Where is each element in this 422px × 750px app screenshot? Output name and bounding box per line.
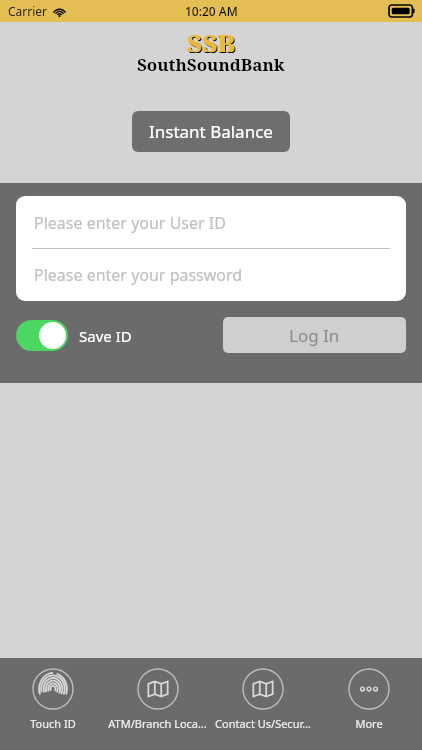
staticText: More	[355, 716, 383, 731]
staticText: SouthSoundBank	[137, 53, 285, 76]
button[interactable]: More	[316, 658, 422, 750]
staticText: SSB	[187, 26, 236, 52]
button[interactable]: ATM/Branch Locator	[105, 658, 210, 750]
staticText: Please enter your User ID	[34, 212, 226, 234]
staticText: SSB	[188, 27, 237, 53]
staticText: Contact Us/Secur…	[215, 716, 311, 731]
button[interactable]: Please enter your User ID	[16, 196, 406, 249]
staticText: Log In	[289, 324, 340, 347]
staticText: 10:20 AM	[185, 3, 238, 19]
staticText: ATM/Branch Loca…	[108, 716, 207, 731]
button[interactable]: Please enter your password	[16, 249, 406, 301]
button[interactable]: Contact Us / Security	[210, 658, 316, 750]
button[interactable]: Instant Balance	[132, 111, 290, 152]
staticText: Carrier	[8, 3, 48, 19]
staticText: Touch ID	[30, 716, 76, 731]
staticText: Save ID	[79, 326, 132, 346]
button[interactable]: Save ID	[16, 320, 132, 351]
staticText: Please enter your password	[34, 264, 243, 286]
button[interactable]: Log In	[223, 317, 406, 353]
staticText: Instant Balance	[149, 120, 273, 143]
button[interactable]: Touch ID	[0, 658, 105, 750]
